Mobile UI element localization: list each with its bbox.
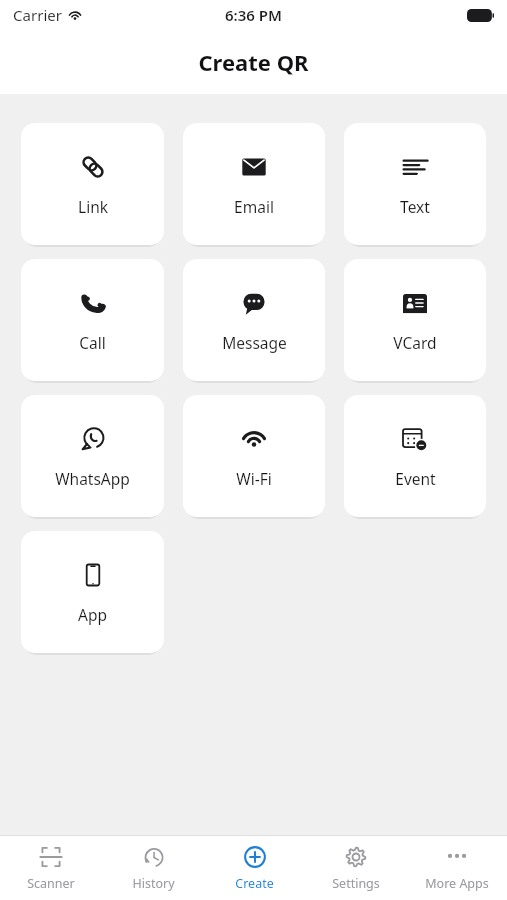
button[interactable]: Message xyxy=(183,259,325,381)
staticText: Carrier xyxy=(13,5,62,25)
staticText: Scanner xyxy=(27,875,75,892)
button[interactable]: WhatsApp xyxy=(21,395,164,517)
staticText: 6:36 PM xyxy=(225,5,282,25)
staticText: Wi-Fi xyxy=(236,468,272,489)
button[interactable]: History xyxy=(102,836,204,900)
staticText: Create QR xyxy=(198,47,309,77)
button[interactable]: Text xyxy=(344,123,486,245)
button[interactable]: More Apps xyxy=(406,836,507,900)
button[interactable]: App xyxy=(21,531,164,653)
staticText: Link xyxy=(78,196,108,217)
button[interactable]: Call xyxy=(21,259,164,381)
staticText: Text xyxy=(400,196,430,217)
button[interactable]: Scanner xyxy=(0,836,102,900)
staticText: Create xyxy=(235,875,274,892)
staticText: Event xyxy=(395,468,436,489)
button[interactable]: Settings xyxy=(305,836,406,900)
staticText: Email xyxy=(234,196,274,217)
staticText: Message xyxy=(222,332,287,353)
button[interactable]: Event xyxy=(344,395,486,517)
button[interactable]: Link xyxy=(21,123,164,245)
staticText: Call xyxy=(79,332,106,353)
staticText: History xyxy=(132,875,175,892)
staticText: App xyxy=(78,604,107,625)
button[interactable]: VCard xyxy=(344,259,486,381)
staticText: VCard xyxy=(393,332,437,353)
button[interactable]: Create xyxy=(204,836,305,900)
button[interactable]: Wi-Fi xyxy=(183,395,325,517)
staticText: WhatsApp xyxy=(55,468,130,489)
staticText: Settings xyxy=(332,875,380,892)
button[interactable]: Email xyxy=(183,123,325,245)
staticText: More Apps xyxy=(425,875,489,892)
